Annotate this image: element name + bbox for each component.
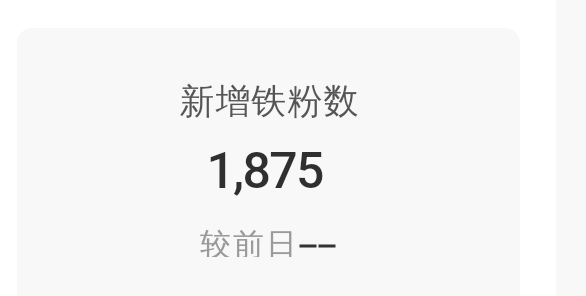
- button[interactable]: 新增铁粉数: [17, 28, 520, 296]
- staticText: 1,875: [206, 142, 323, 201]
- staticText: 新增铁粉数: [179, 79, 359, 123]
- staticText: 较前日: [17, 225, 501, 257]
